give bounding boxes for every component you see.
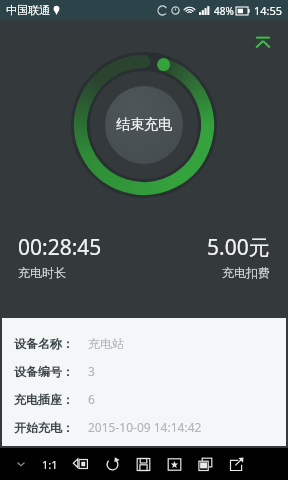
- staticText: 中国联通: [6, 3, 50, 17]
- staticText: 开始充电：: [14, 420, 74, 435]
- staticText: 充电站: [88, 336, 124, 351]
- staticText: 3: [88, 363, 95, 379]
- staticText: 充电时长: [18, 265, 66, 280]
- staticText: 5.00元: [207, 233, 270, 262]
- button[interactable]: Share: [224, 452, 248, 476]
- staticText: 48%: [214, 4, 234, 18]
- button[interactable]: Crop: [69, 452, 93, 476]
- staticText: 6: [88, 391, 95, 407]
- staticText: 设备名称：: [14, 336, 74, 351]
- button[interactable]: Rotate: [100, 452, 124, 476]
- staticText: 设备编号：: [14, 364, 74, 379]
- button[interactable]: Copy: [193, 452, 217, 476]
- button[interactable]: 结束充电: [105, 86, 183, 164]
- button[interactable]: Collapse: [246, 25, 280, 59]
- button[interactable]: Save: [131, 452, 155, 476]
- staticText: 2015-10-09 14:14:42: [88, 419, 202, 435]
- staticText: 充电插座：: [14, 392, 74, 407]
- staticText: 结束充电: [116, 116, 172, 134]
- button[interactable]: Actual size: [38, 452, 62, 476]
- staticText: 00:28:45: [18, 233, 102, 262]
- staticText: 14:55: [254, 3, 283, 18]
- button[interactable]: Favorite: [162, 452, 186, 476]
- staticText: 充电扣费: [222, 265, 270, 280]
- staticText: 1:1: [42, 457, 58, 472]
